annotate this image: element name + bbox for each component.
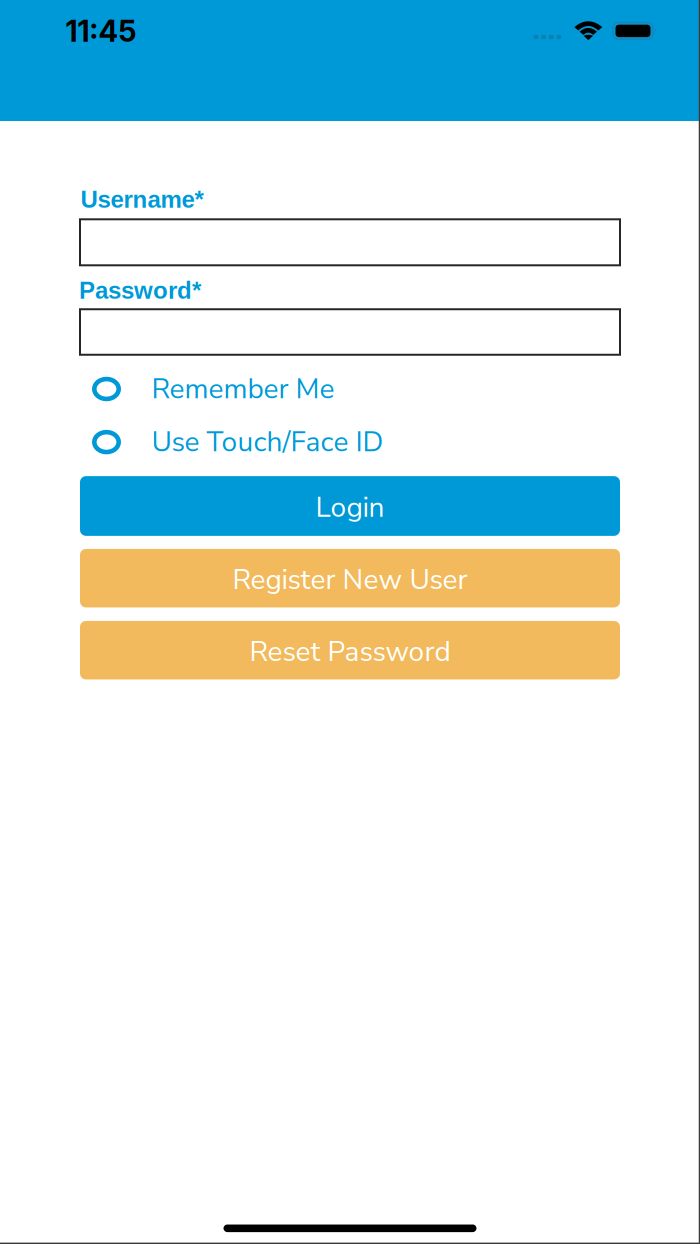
button[interactable]: Register New User (80, 549, 620, 607)
button[interactable]: Remember Me (92, 367, 622, 411)
button[interactable]: Login (80, 476, 620, 536)
staticText: Register New User (232, 561, 467, 599)
staticText: Reset Password (249, 633, 450, 671)
staticText: Username* (80, 186, 203, 213)
staticText: Remember Me (151, 370, 334, 408)
staticText: Use Touch/Face ID (151, 423, 383, 461)
button[interactable]: Use Touch/Face ID (92, 420, 622, 464)
staticText: 11:45 (65, 13, 136, 49)
staticText: Password* (79, 277, 201, 304)
staticText: Login (315, 488, 384, 527)
button[interactable]: Reset Password (80, 621, 620, 679)
